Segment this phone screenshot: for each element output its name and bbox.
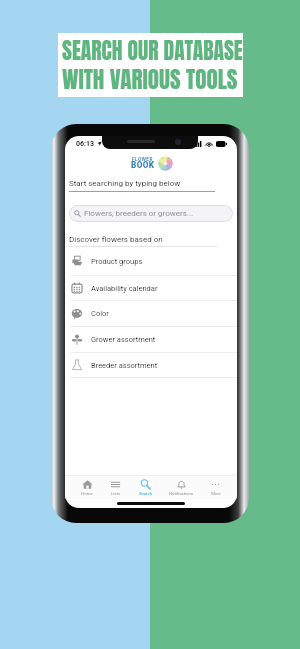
- button[interactable]: Breeder assortment: [65, 353, 237, 378]
- staticText: BOOK: [131, 160, 155, 170]
- staticText: Flowers, breeders or growers...: [84, 209, 194, 218]
- staticText: the online flower guide: [130, 172, 155, 173]
- button[interactable]: Color: [65, 301, 237, 327]
- staticText: More: [211, 491, 221, 496]
- staticText: 06:13: [76, 140, 95, 148]
- staticText: Color: [91, 309, 109, 318]
- button[interactable]: Notifications: [168, 479, 194, 496]
- button[interactable]: Product groups: [65, 247, 237, 276]
- button[interactable]: Search: [138, 479, 153, 496]
- button[interactable]: Lists: [109, 479, 122, 496]
- staticText: Product groups: [91, 257, 143, 266]
- button[interactable]: More: [209, 479, 222, 496]
- staticText: SEARCH OUR DATABASE: [62, 34, 243, 68]
- staticText: Notifications: [169, 491, 193, 496]
- button[interactable]: Flowers, breeders or growers...: [69, 205, 233, 222]
- staticText: Home: [81, 491, 93, 496]
- staticText: Discover flowers based on: [69, 235, 163, 244]
- staticText: FLOWER: [132, 157, 153, 162]
- button[interactable]: Home: [80, 479, 94, 496]
- staticText: Search: [139, 491, 152, 496]
- staticText: Start searching by typing below: [69, 179, 181, 188]
- staticText: Grower assortment: [91, 335, 156, 344]
- button[interactable]: Availability calendar: [65, 276, 237, 301]
- staticText: Availability calendar: [91, 284, 158, 293]
- button[interactable]: Grower assortment: [65, 327, 237, 353]
- staticText: Breeder assortment: [91, 361, 158, 370]
- staticText: Lists: [111, 491, 120, 496]
- staticText: WITH VARIOUS TOOLS: [62, 63, 238, 97]
